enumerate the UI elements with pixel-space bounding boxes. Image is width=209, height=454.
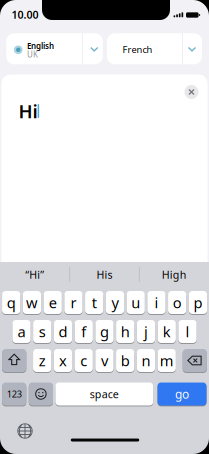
staticText: f [81, 322, 86, 341]
button[interactable]: p [189, 291, 207, 314]
button[interactable]: b [116, 349, 134, 372]
staticText: q [7, 293, 16, 312]
staticText: space [90, 387, 119, 401]
button[interactable]: Clear text [184, 85, 198, 99]
staticText: e [49, 293, 57, 312]
button[interactable]: l [178, 320, 197, 343]
button[interactable]: s [33, 320, 51, 343]
staticText: k [163, 322, 171, 341]
button[interactable]: d [54, 320, 72, 343]
button[interactable]: High [141, 264, 207, 284]
button[interactable]: g [95, 320, 114, 343]
staticText: o [173, 293, 182, 312]
button[interactable]: x [54, 349, 72, 372]
button[interactable]: n [137, 349, 155, 372]
button[interactable]: a [12, 320, 31, 343]
staticText: v [101, 351, 108, 370]
staticText: r [70, 293, 76, 312]
button[interactable]: j [137, 320, 155, 343]
button[interactable]: Shift [2, 349, 26, 372]
button[interactable]: Delete [183, 349, 207, 372]
staticText: His [96, 267, 112, 282]
staticText: 10.00 [11, 7, 38, 22]
button[interactable]: Emoji [29, 382, 53, 405]
button[interactable]: c [75, 349, 93, 372]
staticText: go [175, 386, 189, 402]
button[interactable]: French [107, 33, 202, 64]
button[interactable]: q [2, 291, 20, 314]
staticText: i [154, 293, 158, 312]
staticText: y [111, 293, 118, 312]
button[interactable]: Next keyboard [15, 421, 34, 440]
button[interactable]: i [147, 291, 165, 314]
staticText: l [185, 322, 189, 341]
button[interactable]: e [44, 291, 62, 314]
button[interactable]: h [116, 320, 134, 343]
staticText: English [27, 40, 54, 51]
button[interactable]: w [23, 291, 41, 314]
staticText: j [144, 322, 148, 341]
staticText: n [141, 351, 150, 370]
button[interactable]: English [6, 33, 103, 64]
staticText: Hi [18, 99, 37, 123]
staticText: s [39, 322, 46, 341]
staticText: “Hi” [25, 267, 44, 282]
staticText: u [131, 293, 140, 312]
staticText: p [193, 293, 202, 312]
button[interactable]: y [106, 291, 124, 314]
button[interactable]: His [71, 264, 137, 284]
button[interactable]: k [158, 320, 176, 343]
button[interactable]: o [168, 291, 186, 314]
staticText: a [17, 322, 25, 341]
staticText: t [92, 293, 97, 312]
button[interactable]: “Hi” [2, 264, 68, 284]
staticText: g [100, 322, 109, 341]
staticText: b [121, 351, 130, 370]
staticText: 123 [7, 388, 22, 400]
staticText: x [59, 351, 67, 370]
button[interactable]: z [33, 349, 51, 372]
button[interactable]: v [95, 349, 113, 372]
staticText: h [121, 322, 130, 341]
button[interactable]: u [127, 291, 145, 314]
button[interactable]: go [157, 382, 206, 405]
staticText: d [58, 322, 67, 341]
button[interactable]: t [85, 291, 103, 314]
button[interactable]: f [75, 320, 93, 343]
staticText: French [122, 43, 152, 56]
staticText: c [80, 351, 87, 370]
staticText: z [39, 351, 46, 370]
staticText: w [26, 293, 38, 312]
button[interactable]: space [55, 382, 153, 405]
staticText: m [160, 351, 174, 370]
staticText: UK [27, 49, 38, 60]
button[interactable]: r [64, 291, 82, 314]
staticText: High [162, 267, 187, 282]
button[interactable]: m [158, 349, 176, 372]
button[interactable]: 123 [2, 382, 26, 405]
